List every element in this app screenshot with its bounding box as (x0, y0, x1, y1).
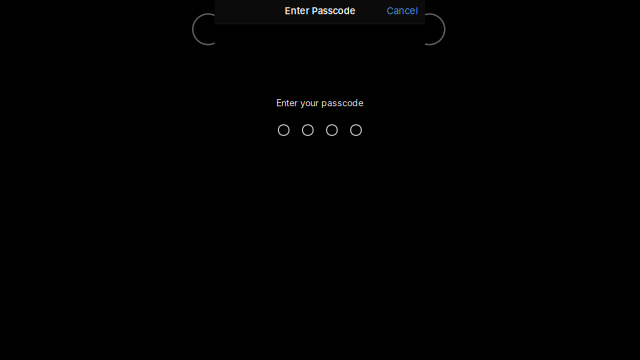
staticText: Enter Passcode (285, 5, 356, 17)
staticText: Enter your passcode (276, 97, 363, 108)
button[interactable]: Cancel (382, 1, 423, 21)
staticText: Cancel (387, 5, 418, 17)
button[interactable]: Passcode field (215, 24, 425, 145)
